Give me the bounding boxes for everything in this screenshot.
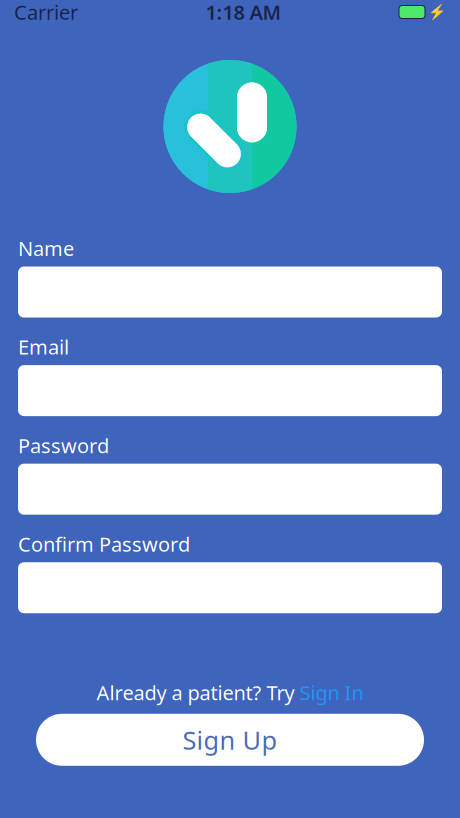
staticText: 1:18 AM	[205, 0, 281, 25]
staticText: Carrier	[14, 0, 88, 25]
staticText: Confirm Password	[18, 531, 190, 557]
staticText: Sign Up	[182, 723, 277, 757]
staticText: ⚡	[428, 4, 446, 20]
staticText: Sign In	[299, 679, 363, 706]
staticText: Already a patient? Try	[96, 679, 299, 706]
button[interactable]: Sign Up	[36, 714, 424, 766]
staticText: Name	[18, 235, 74, 262]
button[interactable]: Sign In	[299, 679, 363, 706]
staticText: Email	[18, 334, 69, 360]
staticText: Password	[18, 432, 109, 459]
